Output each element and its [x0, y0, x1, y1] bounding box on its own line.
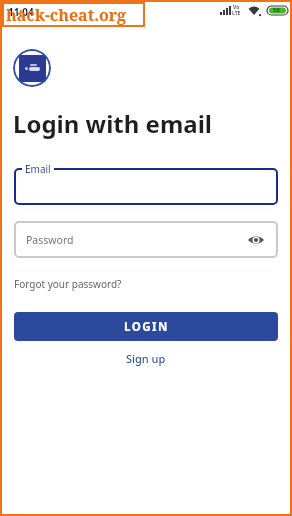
- button[interactable]: [14, 168, 278, 205]
- staticText: hack-cheat.org: [6, 4, 127, 26]
- button[interactable]: Sign up: [126, 351, 166, 366]
- staticText: 11:04: [8, 5, 34, 19]
- button[interactable]: Forgot your password?: [14, 277, 122, 291]
- staticText: Login with email: [13, 107, 213, 140]
- staticText: Email: [25, 162, 51, 176]
- staticText: LOGIN: [124, 319, 169, 335]
- button[interactable]: Password: [14, 221, 278, 258]
- button[interactable]: [247, 233, 265, 247]
- staticText: Password: [26, 233, 74, 247]
- button[interactable]: LOGIN: [14, 312, 278, 341]
- staticText: LTE: [232, 10, 241, 17]
- staticText: Vo: [233, 4, 240, 11]
- staticText: 58: [273, 6, 280, 14]
